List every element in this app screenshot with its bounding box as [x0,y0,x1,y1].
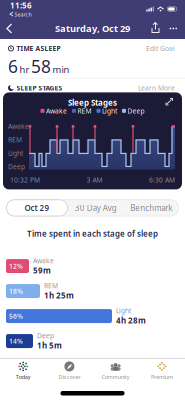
staticText: Awake [8,122,29,131]
button[interactable]: Edit Goal [146,44,175,53]
staticText: 18% [9,287,23,295]
button[interactable]: 30 Day Avg [68,203,123,213]
staticText: Learn More [138,84,175,92]
staticText: Time spent in each stage of sleep [27,228,158,239]
staticText: REM [44,281,58,290]
staticText: Deep [127,106,144,115]
staticText: hr [19,63,29,76]
staticText: REM [8,135,22,144]
staticText: 59m [33,265,51,276]
staticText: 11:56 [10,0,32,11]
staticText: Saturday, Oct 29 [55,22,130,35]
staticText: 6:30 AM [149,175,175,184]
button[interactable] [150,23,160,34]
staticText: 58 [31,55,51,78]
staticText: 1h 5m [37,340,62,351]
staticText: Today [16,373,31,380]
button[interactable]: Premium [139,361,185,380]
staticText: Oct 29 [24,203,49,213]
staticText: 56% [9,312,23,320]
button[interactable] [0,24,13,33]
staticText: Light [8,149,23,158]
button[interactable]: Learn More [138,84,175,92]
staticText: TIME ASLEEP [16,44,60,53]
staticText: SLEEP STAGES [16,84,62,92]
staticText: Search [14,11,31,18]
staticText: 14% [9,337,23,345]
staticText: 12% [9,262,23,270]
button[interactable]: Community [92,361,139,380]
staticText: Sleep Stages [68,97,117,108]
staticText: 1h 25m [44,290,74,301]
staticText: Awake [46,106,67,115]
staticText: 30 Day Avg [75,203,117,213]
staticText: REM [77,106,91,115]
button[interactable] [160,28,185,29]
staticText: Deep [37,331,54,340]
staticText: Deep [8,162,25,171]
button[interactable] [166,98,173,105]
staticText: Premium [151,373,173,380]
staticText: 3 AM [86,175,102,184]
button[interactable]: Benchmark [123,203,179,213]
button[interactable]: Discover [46,361,92,380]
staticText: Light [116,306,131,315]
button[interactable]: Oct 29 [6,199,68,216]
staticText: Light [102,106,117,115]
button[interactable]: Today [0,361,46,380]
staticText: Discover [58,373,80,380]
staticText: 4h 28m [116,315,146,326]
staticText: 6 [8,55,18,78]
staticText: Edit Goal [146,44,175,53]
staticText: Awake [33,256,54,265]
staticText: Community [102,373,130,380]
staticText: min [52,63,69,76]
staticText: 10:32 PM [10,175,40,184]
staticText: Benchmark [130,203,172,213]
